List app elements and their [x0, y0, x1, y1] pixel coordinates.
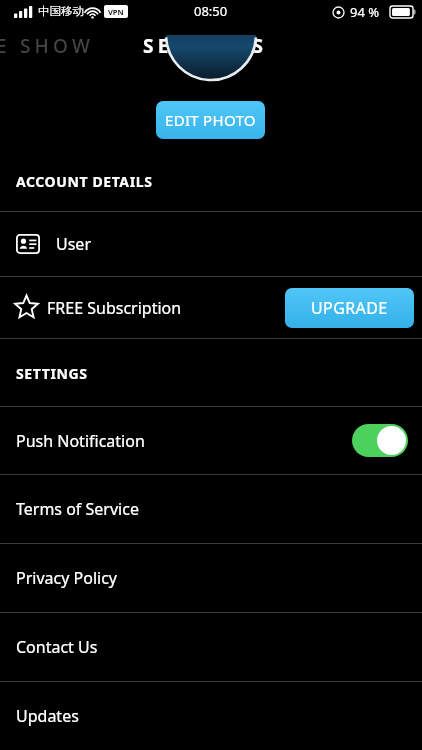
staticText: 94 %	[350, 3, 380, 21]
button[interactable]: Push Notification	[0, 407, 422, 474]
button[interactable]: User	[0, 212, 422, 276]
staticText: 中国移动	[38, 4, 84, 18]
button[interactable]: Terms of Service	[0, 475, 422, 543]
button[interactable]: Updates	[0, 682, 422, 750]
button[interactable]: EDIT PHOTO	[156, 101, 265, 139]
staticText: User	[56, 233, 91, 255]
staticText: Contact Us	[16, 636, 98, 658]
staticText: VPN	[108, 7, 124, 17]
staticText: Terms of Service	[16, 498, 139, 520]
staticText: EDIT PHOTO	[165, 110, 256, 130]
button[interactable]: E SHOW	[0, 33, 94, 59]
button[interactable]: Privacy Policy	[0, 544, 422, 612]
button[interactable]: Contact Us	[0, 613, 422, 681]
button[interactable]: UPGRADE	[285, 288, 414, 328]
staticText: 08:50	[194, 2, 228, 20]
staticText: Push Notification	[16, 430, 145, 452]
staticText: FREE Subscription	[47, 297, 182, 319]
button[interactable]: FREE Subscription	[0, 277, 422, 338]
button[interactable]: Push Notification toggle, on	[352, 424, 408, 457]
staticText: ACCOUNT DETAILS	[16, 172, 153, 191]
staticText: Privacy Policy	[16, 567, 117, 589]
staticText: SETTINGS	[16, 364, 88, 383]
button[interactable]: SETTINGS	[143, 33, 268, 59]
staticText: UPGRADE	[311, 297, 388, 319]
staticText: Updates	[16, 705, 79, 727]
